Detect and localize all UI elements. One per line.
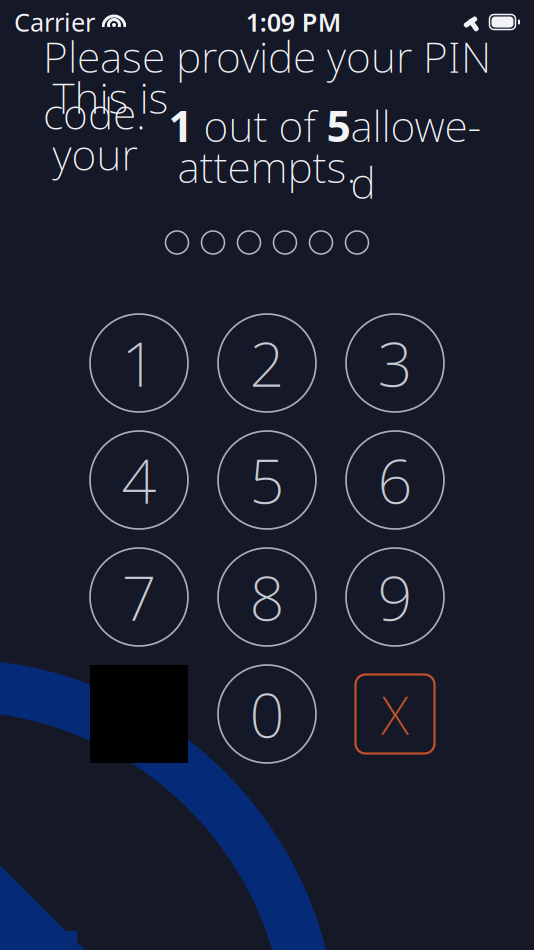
button[interactable]: 7 [90,548,188,646]
staticText: 4 [121,439,156,521]
button[interactable]: 3 [346,314,444,412]
staticText: 0 [249,673,284,755]
button[interactable]: 6 [346,431,444,529]
staticText: 5 [326,97,350,154]
staticText: X [381,679,409,749]
staticText: This is your [52,69,168,182]
button[interactable]: 5 [218,431,316,529]
staticText: 7 [121,556,156,638]
staticText: out of [192,97,326,154]
staticText: 8 [249,556,284,638]
staticText: 1 [168,97,192,154]
button[interactable]: 0 [218,665,316,763]
button[interactable]: Delete [346,665,444,763]
staticText: Please provide your PIN code. [43,28,491,141]
staticText: 2 [249,322,284,404]
staticText: allowed [350,40,481,210]
button[interactable]: 2 [218,314,316,412]
staticText: attempts. [177,138,356,195]
button[interactable]: 1 [90,314,188,412]
staticText: 1 [121,322,156,404]
staticText: 3 [377,322,412,404]
staticText: 1:09 PM [246,5,342,39]
staticText: Carrier [14,5,95,39]
button[interactable]: 9 [346,548,444,646]
button[interactable]: 4 [90,431,188,529]
button[interactable]: 8 [218,548,316,646]
staticText: 5 [249,439,284,521]
staticText: 9 [377,556,412,638]
staticText: 6 [377,439,412,521]
